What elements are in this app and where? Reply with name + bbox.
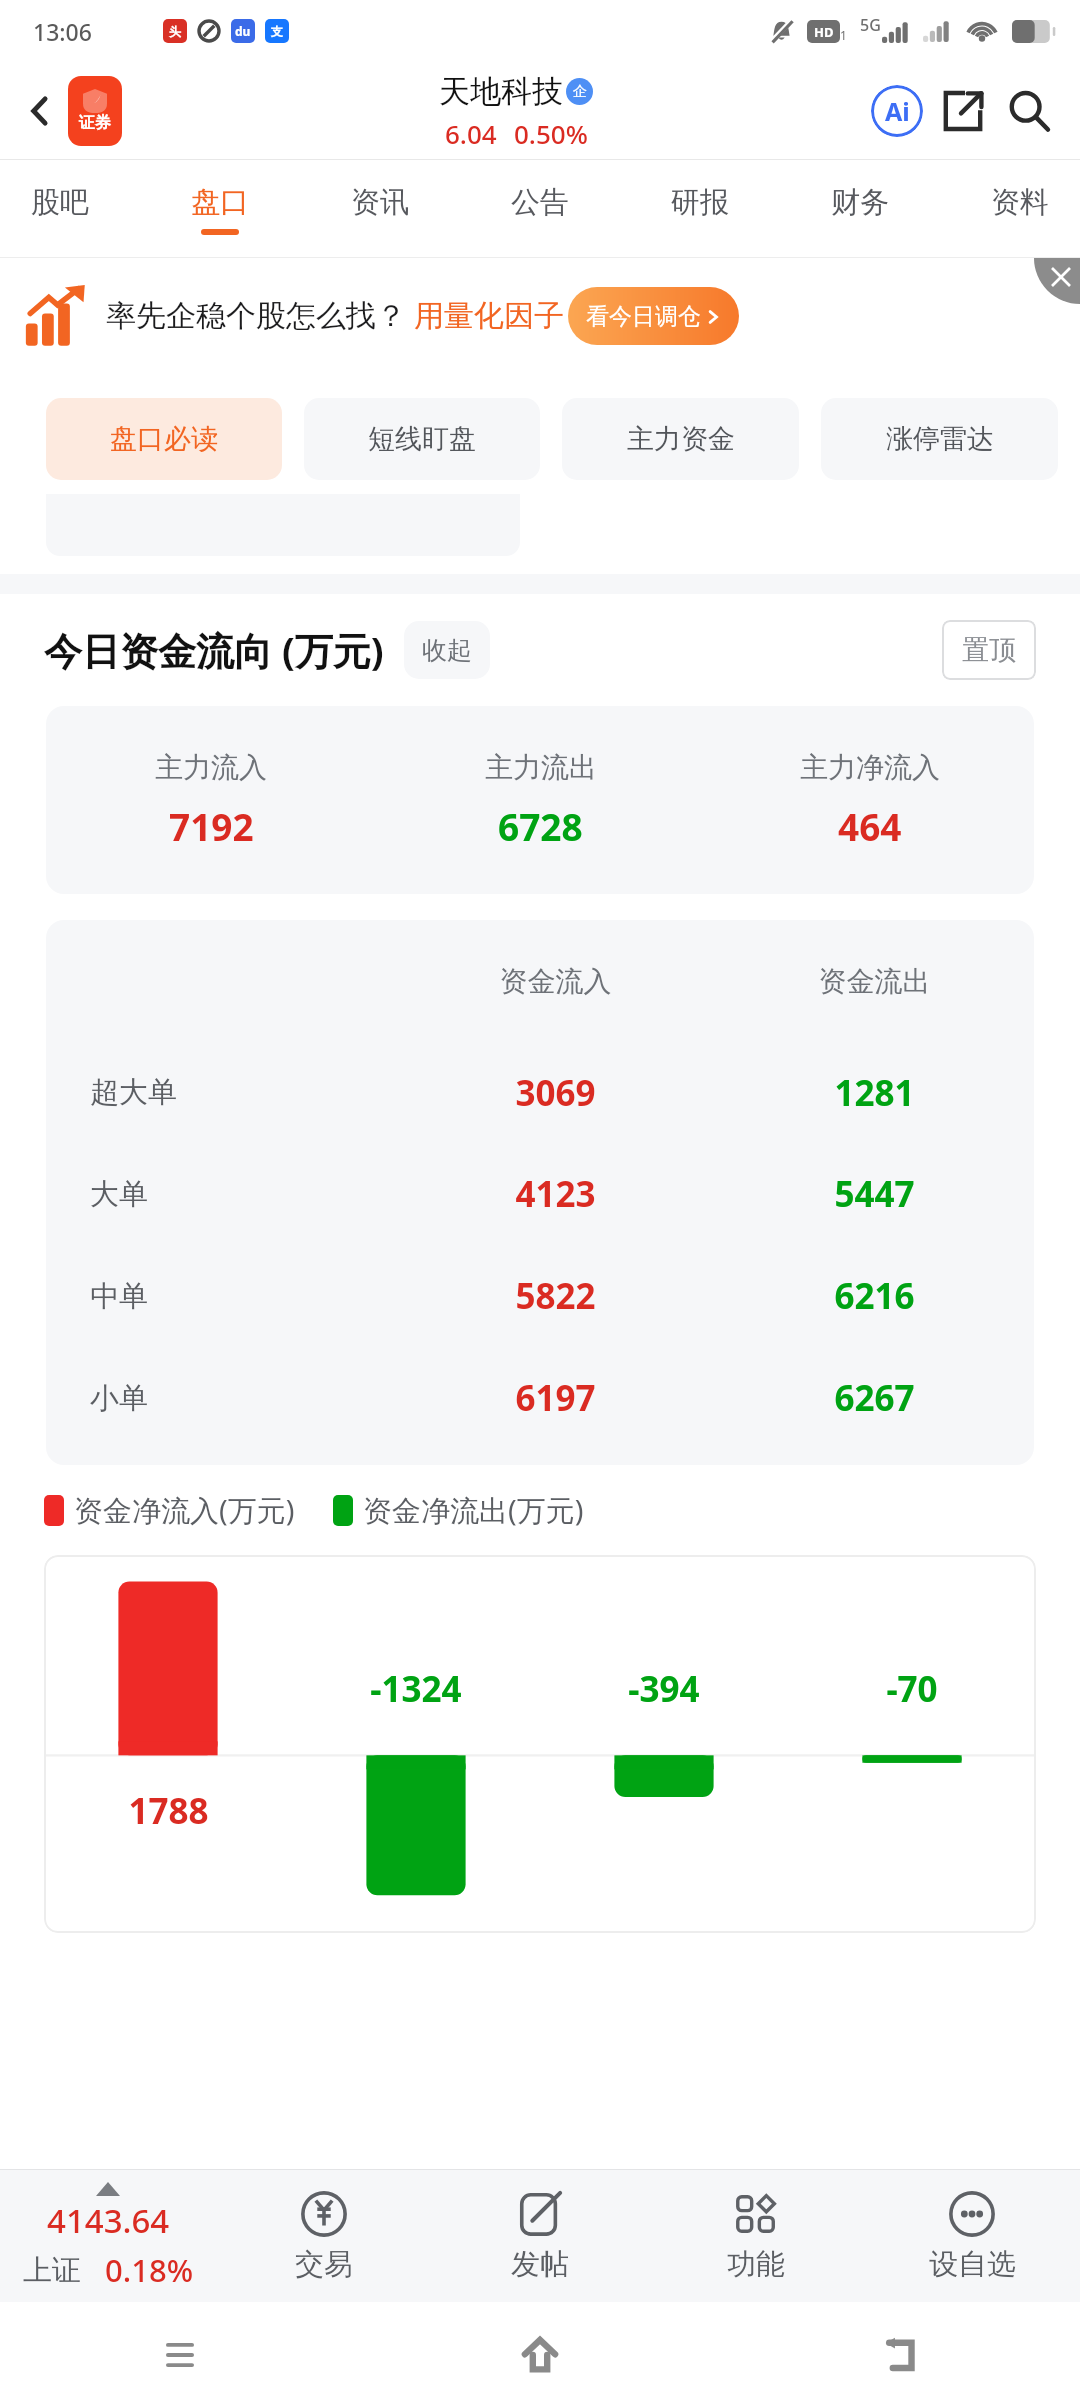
button[interactable]: 功能 — [648, 2190, 864, 2283]
staticText: 资讯 — [351, 184, 409, 221]
button[interactable]: 资讯 — [348, 184, 412, 235]
staticText: HD — [814, 23, 834, 41]
staticText: 资金净流出(万元) — [363, 1490, 584, 1530]
staticText: 收起 — [422, 635, 472, 666]
staticText: 3069 — [396, 1069, 715, 1117]
button[interactable]: 看今日调仓 — [568, 287, 739, 345]
staticText: 盘口 — [191, 184, 249, 221]
button[interactable]: 交易 — [216, 2190, 432, 2283]
staticText: 公告 — [511, 184, 569, 221]
button[interactable]: 4143.64 — [0, 2182, 216, 2291]
button[interactable]: 发帖 — [432, 2190, 648, 2283]
staticText: 功能 — [727, 2246, 785, 2283]
staticText: 支 — [271, 24, 283, 39]
staticText: 股吧 — [31, 184, 89, 221]
staticText: 6267 — [715, 1374, 1034, 1422]
button[interactable]: 公告 — [508, 184, 572, 235]
staticText: -70 — [886, 1665, 938, 1713]
staticText: 0.18% — [105, 2249, 194, 2291]
staticText: 主力流入 — [155, 750, 267, 785]
button[interactable]: 率先企稳个股怎么找？ — [0, 258, 1080, 374]
button[interactable]: Share — [930, 78, 996, 144]
staticText: 资金流出 — [715, 964, 1034, 999]
staticText: 1788 — [128, 1787, 209, 1835]
staticText: 率先企稳个股怎么找？ — [106, 297, 406, 335]
staticText: 看今日调仓 — [586, 302, 701, 331]
staticText: 发帖 — [511, 2246, 569, 2283]
staticText: -1324 — [370, 1665, 462, 1713]
button[interactable]: 设自选 — [864, 2190, 1080, 2283]
staticText: 资金流入 — [396, 964, 715, 999]
button[interactable]: Back — [12, 83, 68, 139]
staticText: 今日资金流向 (万元) — [44, 624, 384, 676]
button[interactable]: 小单 — [46, 1347, 1034, 1449]
staticText: 1281 — [715, 1069, 1034, 1117]
staticText: 企 — [573, 83, 587, 101]
staticText: 大单 — [90, 1176, 396, 1213]
button[interactable]: Back — [868, 2323, 932, 2387]
staticText: 头 — [169, 24, 181, 39]
staticText: 13:06 — [33, 16, 92, 47]
button[interactable]: 中单 — [46, 1245, 1034, 1347]
staticText: 盘口必读 — [110, 422, 218, 456]
button[interactable]: 盘口 — [188, 184, 252, 235]
staticText: 小单 — [90, 1380, 396, 1417]
staticText: Ai — [885, 94, 910, 128]
staticText: 0.50% — [514, 116, 588, 151]
staticText: 4123 — [396, 1170, 715, 1218]
staticText: 上证 — [23, 2252, 81, 2289]
button[interactable]: Recents — [148, 2323, 212, 2387]
staticText: 研报 — [671, 184, 729, 221]
button[interactable]: 财务 — [828, 184, 892, 235]
staticText: 中单 — [90, 1278, 396, 1315]
staticText: 设自选 — [929, 2246, 1016, 2283]
button[interactable]: 关闭广告 — [1034, 258, 1080, 304]
button[interactable]: 盘口必读 — [46, 398, 282, 480]
button[interactable]: 短线盯盘 — [304, 398, 540, 480]
button[interactable]: 证券 — [68, 76, 122, 146]
staticText: 涨停雷达 — [886, 422, 994, 456]
staticText: 资料 — [991, 184, 1049, 221]
staticText: 4143.64 — [47, 2198, 170, 2243]
staticText: 交易 — [295, 2246, 353, 2283]
staticText: -394 — [628, 1665, 700, 1713]
button[interactable]: 股吧 — [28, 184, 92, 235]
staticText: 主力流出 — [485, 750, 597, 785]
button[interactable]: 主力资金 — [562, 398, 799, 480]
staticText: 主力净流入 — [800, 750, 940, 785]
staticText: 1 — [840, 27, 847, 43]
staticText: 5822 — [396, 1272, 715, 1320]
staticText: 短线盯盘 — [368, 422, 476, 456]
button[interactable]: 涨停雷达 — [821, 398, 1058, 480]
button[interactable]: 收起 — [404, 621, 490, 679]
button[interactable]: Search — [996, 78, 1062, 144]
staticText: 主力资金 — [627, 422, 735, 456]
staticText: 财务 — [831, 184, 889, 221]
button[interactable]: 置顶 — [942, 620, 1036, 680]
staticText: 6728 — [498, 801, 583, 851]
staticText: 6197 — [396, 1374, 715, 1422]
staticText: 7192 — [169, 801, 254, 851]
button[interactable]: 资料 — [988, 184, 1052, 235]
staticText: 天地科技 — [439, 72, 563, 111]
staticText: 用量化因子 — [414, 297, 564, 335]
staticText: 资金净流入(万元) — [74, 1490, 295, 1530]
staticText: 5G — [860, 14, 881, 36]
staticText: 超大单 — [90, 1074, 396, 1111]
staticText: du — [235, 23, 251, 39]
staticText: 464 — [838, 801, 902, 851]
staticText: 置顶 — [962, 633, 1016, 667]
button[interactable]: 大单 — [46, 1143, 1034, 1245]
staticText: 6216 — [715, 1272, 1034, 1320]
button[interactable]: Home — [508, 2323, 572, 2387]
staticText: 证券 — [79, 113, 111, 133]
button[interactable]: 超大单 — [46, 1042, 1034, 1143]
staticText: 6.04 — [445, 116, 497, 151]
button[interactable]: AI 助手 — [864, 78, 930, 144]
staticText: 5447 — [715, 1170, 1034, 1218]
button[interactable]: 研报 — [668, 184, 732, 235]
